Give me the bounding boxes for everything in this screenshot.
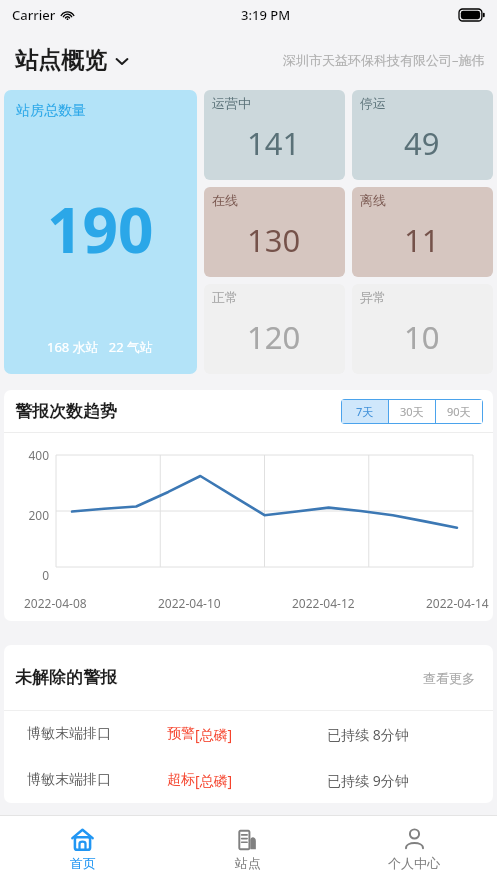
staticText: 7天 (356, 404, 374, 419)
staticText: 博敏末端排口 (27, 771, 111, 789)
button[interactable]: 博敏末端排口 (4, 711, 493, 757)
staticText: 查看更多 (423, 670, 475, 686)
staticText: 0 (4, 567, 49, 583)
staticText: 已持续 8分钟 (327, 725, 409, 744)
staticText: 2022-04-10 (158, 595, 221, 611)
staticText: 预警 (167, 725, 195, 743)
button[interactable]: 站点 (165, 816, 331, 883)
button[interactable]: 博敏末端排口 (4, 757, 493, 803)
staticText: 站房总数量 (16, 102, 86, 120)
button[interactable]: 正常 (204, 284, 345, 374)
staticText: 141 (247, 122, 301, 164)
staticText: 超标 (167, 771, 195, 789)
button[interactable]: 查看更多 (423, 670, 475, 686)
button[interactable]: 7天 (342, 400, 388, 423)
staticText: [总磷] (195, 725, 233, 744)
staticText: 2022-04-12 (292, 595, 355, 611)
staticText: 停运 (360, 95, 386, 111)
staticText: 异常 (360, 289, 386, 305)
button[interactable]: 90天 (436, 400, 482, 423)
staticText: 2022-04-08 (24, 595, 87, 611)
staticText: 已持续 9分钟 (327, 771, 409, 790)
staticText: [总磷] (195, 771, 233, 790)
staticText: 未解除的警报 (15, 667, 117, 688)
button[interactable]: 离线 (352, 187, 493, 277)
staticText: 130 (247, 219, 301, 261)
staticText: 400 (4, 447, 49, 463)
staticText: 168 水站 22 气站 (47, 338, 154, 356)
staticText: Carrier (12, 6, 56, 24)
staticText: 11 (404, 219, 440, 261)
staticText: 200 (4, 507, 49, 523)
button[interactable]: 个人中心 (331, 816, 497, 883)
staticText: 离线 (360, 192, 386, 208)
staticText: 个人中心 (388, 855, 440, 871)
staticText: 博敏末端排口 (27, 725, 111, 743)
staticText: 3:19 PM (241, 6, 291, 24)
button[interactable]: 运营中 (204, 90, 345, 180)
staticText: 在线 (212, 192, 238, 208)
staticText: 190 (47, 187, 154, 271)
button[interactable]: 在线 (204, 187, 345, 277)
staticText: 30天 (400, 404, 424, 419)
button[interactable]: 站点概览 (15, 46, 130, 75)
staticText: 警报次数趋势 (15, 401, 117, 422)
staticText: 90天 (447, 404, 471, 419)
staticText: 49 (404, 122, 440, 164)
button[interactable]: 首页 (0, 816, 165, 883)
button[interactable]: 站房总数量 (4, 90, 197, 374)
staticText: 首页 (70, 855, 96, 871)
staticText: 10 (404, 316, 440, 358)
staticText: 深圳市天益环保科技有限公司–施伟 (283, 51, 485, 69)
staticText: 2022-04-14 (426, 595, 489, 611)
staticText: 站点概览 (15, 46, 107, 75)
button[interactable]: 30天 (389, 400, 435, 423)
staticText: 运营中 (212, 95, 251, 111)
staticText: 正常 (212, 289, 238, 305)
staticText: 站点 (235, 855, 261, 871)
button[interactable]: 异常 (352, 284, 493, 374)
button[interactable]: 停运 (352, 90, 493, 180)
staticText: 120 (247, 316, 301, 358)
